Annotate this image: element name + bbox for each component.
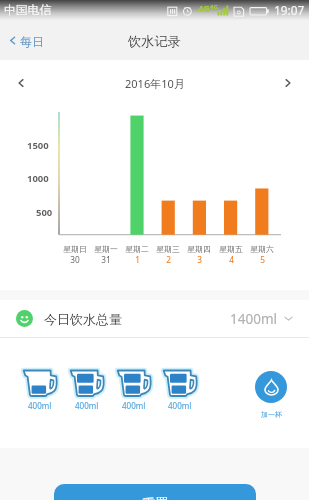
staticText: 400ml bbox=[28, 400, 52, 411]
button[interactable]: 400ml bbox=[17, 369, 63, 411]
staticText: 星期四 bbox=[187, 244, 211, 254]
staticText: 5 bbox=[260, 254, 265, 265]
staticText: 加一杯 bbox=[261, 410, 282, 419]
staticText: 1 bbox=[135, 254, 140, 265]
staticText: 1000 bbox=[27, 172, 49, 185]
button[interactable]: 400ml bbox=[111, 369, 157, 411]
staticText: 400ml bbox=[75, 400, 99, 411]
staticText: 4 bbox=[229, 254, 234, 265]
staticText: 星期日 bbox=[63, 244, 87, 254]
staticText: 2016年10月 bbox=[125, 76, 185, 91]
staticText: 4G bbox=[210, 3, 218, 11]
staticText: 500 bbox=[36, 206, 53, 219]
staticText: 星期三 bbox=[156, 244, 180, 254]
staticText: 3 bbox=[197, 254, 202, 265]
staticText: 星期六 bbox=[250, 244, 274, 254]
staticText: 2 bbox=[166, 254, 171, 265]
staticText: 30 bbox=[70, 254, 80, 265]
button[interactable]: Next month bbox=[275, 70, 301, 96]
staticText: 400ml bbox=[122, 400, 146, 411]
staticText: 星期五 bbox=[219, 244, 243, 254]
staticText: 中国电信 bbox=[4, 3, 52, 18]
staticText: 4G bbox=[198, 2, 210, 14]
staticText: 饮水记录 bbox=[128, 33, 181, 50]
button[interactable]: 今日饮水总量 bbox=[0, 300, 309, 337]
button[interactable]: Previous month bbox=[8, 70, 34, 96]
button[interactable]: Add a cup of water bbox=[248, 371, 294, 419]
staticText: 19:07 bbox=[274, 2, 305, 18]
staticText: 星期一 bbox=[94, 244, 118, 254]
button[interactable]: 400ml bbox=[157, 369, 203, 411]
staticText: 1500 bbox=[27, 139, 49, 152]
button[interactable]: 重置 bbox=[54, 484, 256, 500]
staticText: 今日饮水总量 bbox=[44, 311, 122, 327]
staticText: 每日 bbox=[20, 34, 44, 49]
staticText: 31 bbox=[101, 254, 111, 265]
staticText: 重置 bbox=[142, 495, 169, 500]
staticText: 400ml bbox=[168, 400, 192, 411]
button[interactable]: 400ml bbox=[64, 369, 110, 411]
staticText: 1400ml bbox=[230, 310, 277, 328]
button[interactable]: 每日 bbox=[6, 23, 44, 57]
staticText: 星期二 bbox=[125, 244, 149, 254]
